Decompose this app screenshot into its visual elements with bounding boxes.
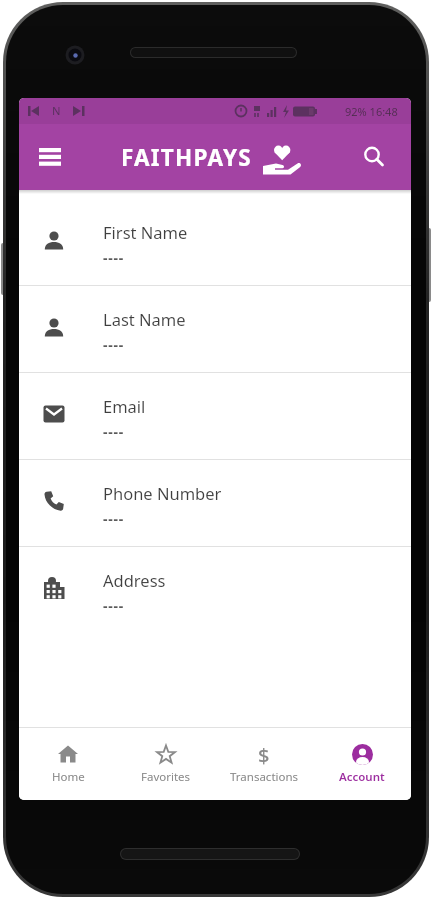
staticText: FAITHPAYS [121, 142, 252, 173]
staticText: Home [52, 769, 85, 785]
button[interactable]: Address [19, 547, 411, 634]
staticText: First Name [103, 221, 188, 243]
staticText: Account [339, 769, 385, 785]
staticText: Transactions [230, 769, 299, 785]
button[interactable]: Account [313, 728, 411, 800]
staticText: ---- [103, 422, 125, 441]
staticText: Email [103, 395, 146, 417]
button[interactable]: Home [19, 728, 117, 800]
staticText: Phone Number [103, 482, 222, 504]
staticText: Last Name [103, 308, 186, 330]
staticText: Address [103, 569, 166, 591]
button[interactable]: Phone Number [19, 460, 411, 547]
staticText: 92% 16:48 [345, 104, 398, 119]
staticText: ---- [103, 596, 125, 615]
button[interactable]: First Name [19, 199, 411, 286]
staticText: Favorites [141, 769, 191, 785]
staticText: ---- [103, 509, 125, 528]
button[interactable] [355, 138, 393, 176]
staticText: N [52, 103, 61, 118]
staticText: $ [258, 742, 270, 766]
staticText: ---- [103, 335, 125, 354]
button[interactable] [31, 138, 69, 176]
staticText: ---- [103, 248, 125, 267]
button[interactable]: Favorites [117, 728, 215, 800]
button[interactable]: Email [19, 373, 411, 460]
button[interactable]: $ [215, 728, 313, 800]
button[interactable]: Last Name [19, 286, 411, 373]
